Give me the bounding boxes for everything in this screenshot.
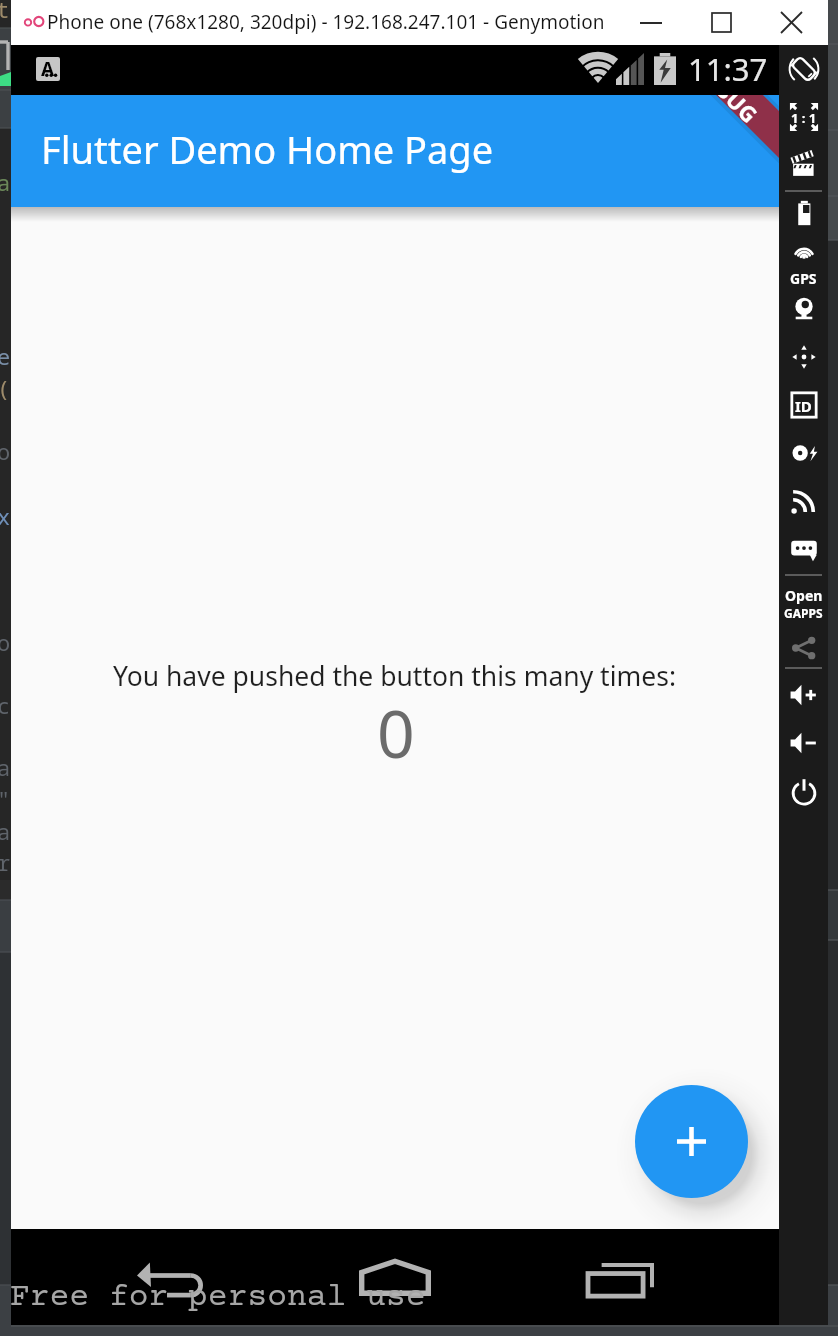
button[interactable]: Share (779, 624, 828, 672)
button[interactable]: Accelerometer (779, 333, 828, 381)
staticText: GAPPS (784, 605, 823, 621)
staticText: ti (0, 0, 23, 24)
button[interactable]: Battery (779, 189, 828, 237)
button[interactable]: Power (779, 768, 828, 816)
button[interactable]: Recents (571, 1231, 691, 1323)
staticText: a (0, 167, 11, 197)
button[interactable]: Record (779, 141, 828, 189)
button[interactable]: Minimize (616, 0, 686, 45)
staticText: e (0, 341, 11, 371)
staticText: A (41, 56, 55, 80)
button[interactable]: Volume down (779, 719, 828, 767)
staticText: c (0, 690, 11, 720)
button[interactable]: Volume up (779, 671, 828, 719)
staticText: Free for personal use (10, 1279, 426, 1316)
button[interactable]: Maximize (686, 0, 756, 45)
button[interactable]: GPS (779, 237, 828, 285)
staticText: 11:37 (688, 48, 768, 90)
button[interactable]: Disk IO (779, 429, 828, 477)
staticText: 1 : 1 (791, 109, 817, 127)
staticText: GPS (790, 269, 817, 288)
button[interactable]: Increment (635, 1085, 748, 1198)
staticText: o (0, 436, 11, 466)
button[interactable]: Rotate (779, 45, 828, 93)
staticText: ID (795, 396, 812, 416)
button[interactable]: Identifiers (779, 381, 828, 429)
staticText: o (0, 627, 11, 657)
staticText: ( (0, 373, 11, 403)
staticText: a (0, 752, 11, 782)
staticText: DEBUG (689, 95, 765, 129)
button[interactable]: Camera (779, 285, 828, 333)
staticText: x (0, 501, 11, 531)
staticText: Open (785, 586, 823, 605)
staticText: 0 (377, 687, 415, 777)
staticText: r (0, 847, 11, 877)
button[interactable]: Home (346, 1229, 466, 1321)
button[interactable]: Input method (36, 57, 60, 81)
staticText: " (0, 784, 11, 814)
button[interactable]: Close (756, 0, 826, 45)
staticText: Flutter Demo Home Page (41, 123, 494, 175)
staticText: You have pushed the button this many tim… (113, 658, 676, 694)
button[interactable]: Network (779, 477, 828, 525)
button[interactable]: Phone (779, 525, 828, 573)
staticText: a (0, 816, 11, 846)
button[interactable]: Scale 1:1 (779, 93, 828, 141)
button[interactable]: Back (121, 1231, 241, 1323)
button[interactable]: Open GAPPS (779, 574, 828, 622)
staticText: Phone one (768x1280, 320dpi) - 192.168.2… (47, 9, 605, 35)
